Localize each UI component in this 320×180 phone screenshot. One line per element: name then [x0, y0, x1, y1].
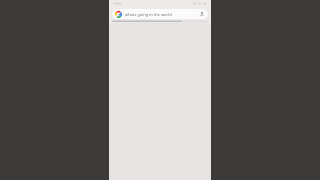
button[interactable]: whats going in the world	[112, 9, 208, 19]
button[interactable]: Voice search	[199, 11, 205, 17]
staticText: whats going in the world	[125, 12, 197, 17]
